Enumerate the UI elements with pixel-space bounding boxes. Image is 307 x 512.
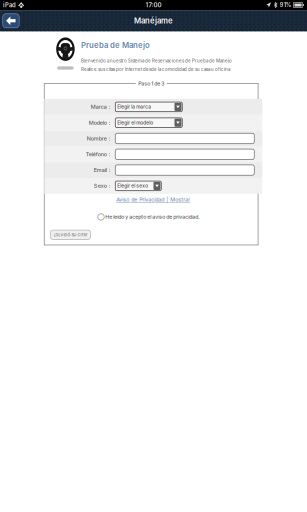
staticText: Sexo : [94,183,111,189]
staticText: 91% [280,2,292,8]
staticText: Marca : [91,104,111,110]
staticText: Elegir el sexo [117,183,148,189]
staticText: Nombre : [87,135,111,142]
staticText: 17:00 [145,1,161,9]
button[interactable]: Elegir la marca [115,102,182,112]
staticText: Realice sus citas por Internet desde la … [81,67,230,72]
staticText: Email : [94,167,111,173]
staticText: Paso 1 de 3 [138,80,164,87]
button[interactable]: Nombre [115,133,254,144]
button[interactable]: Elegir el sexo [115,181,161,191]
staticText: He leído y acepto el aviso de privacidad… [105,214,199,220]
staticText: ¿OLVIDÓ SU CITA? [53,232,87,237]
staticText: Manéjame [134,16,173,25]
staticText: Elegir la marca [117,104,151,110]
button[interactable]: ¿OLVIDÓ SU CITA? [50,230,90,239]
button[interactable]: Email [115,165,254,175]
button[interactable]: Elegir el modelo [115,118,182,127]
staticText: iPad [3,1,16,9]
button[interactable]: Back [3,14,19,28]
staticText: Aviso de Privacidad | Mostrar [116,196,190,203]
button[interactable]: Teléfono [115,149,254,159]
staticText: Modelo : [89,119,111,126]
button[interactable]: Aviso de Privacidad | Mostrar [116,196,190,203]
staticText: Teléfono : [86,151,111,158]
staticText: Prueba de Manejo [81,40,150,50]
staticText: Elegir el modelo [117,120,153,126]
staticText: Bienvenido a nuestro Sistema de Reservac… [81,58,232,63]
